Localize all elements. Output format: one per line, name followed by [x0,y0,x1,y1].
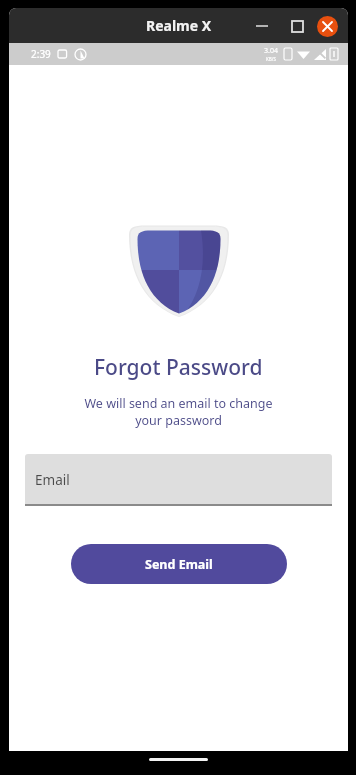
button[interactable]: Send Email [71,544,287,584]
staticText: Forgot Password [94,353,263,382]
staticText: We will send an email to change your pas… [84,395,273,429]
staticText: 3.04 [264,46,278,56]
button[interactable]: Close [317,16,338,37]
button[interactable]: Email [25,454,332,506]
staticText: KB/S [266,56,276,62]
staticText: Email [35,471,70,489]
staticText: Send Email [145,556,213,573]
button[interactable]: Maximize [284,13,310,39]
staticText: 2:39 [31,47,51,61]
button[interactable]: Minimize [249,13,275,39]
staticText: Realme X [146,16,212,35]
